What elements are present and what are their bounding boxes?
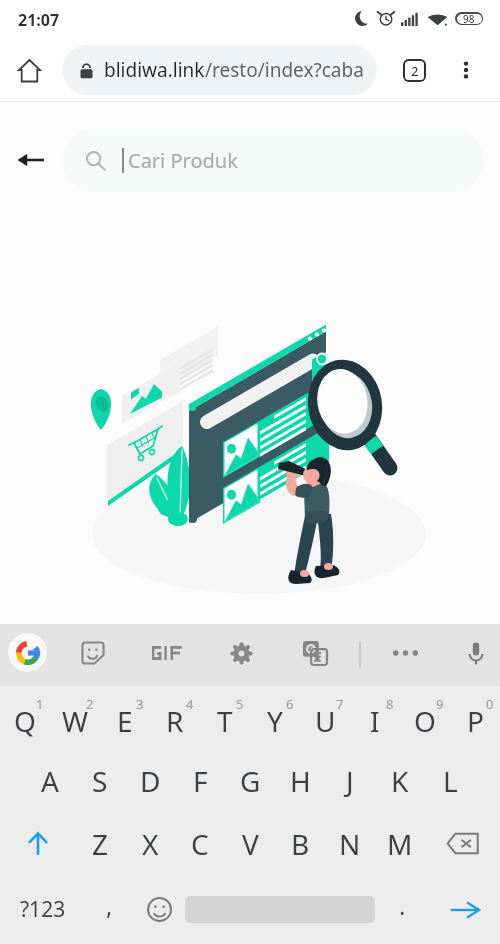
button[interactable]: Settings <box>220 632 262 674</box>
staticText: T <box>217 702 233 740</box>
staticText: , <box>106 889 113 922</box>
staticText: N <box>339 825 361 863</box>
staticText: V <box>242 825 259 863</box>
staticText: M <box>387 825 413 863</box>
staticText: R <box>166 702 184 740</box>
button[interactable]: Back <box>10 140 50 180</box>
button[interactable]: Z <box>75 812 125 875</box>
staticText: 0 <box>486 695 494 713</box>
button[interactable]: E <box>100 686 150 750</box>
button[interactable]: J <box>325 750 375 812</box>
staticText: 9 <box>436 695 444 713</box>
staticText: 3 <box>136 695 144 713</box>
staticText: S <box>92 762 108 800</box>
staticText: 98 <box>463 12 475 25</box>
staticText: Cari Produk <box>128 147 238 174</box>
staticText: O <box>414 702 436 740</box>
staticText: U <box>315 702 336 740</box>
button[interactable]: B <box>275 812 325 875</box>
button[interactable]: Backspace <box>425 812 500 875</box>
button[interactable]: D <box>125 750 175 812</box>
button[interactable]: C <box>175 812 225 875</box>
button[interactable]: U <box>300 686 350 750</box>
button[interactable]: P <box>450 686 500 750</box>
staticText: Y <box>267 702 283 740</box>
button[interactable]: . <box>375 875 430 944</box>
staticText: C <box>191 825 209 863</box>
staticText: 1 <box>36 695 44 713</box>
staticText: 7 <box>336 695 344 713</box>
button[interactable]: Q <box>0 686 50 750</box>
staticText: 5 <box>236 695 244 713</box>
button[interactable]: I <box>350 686 400 750</box>
button[interactable]: Voice input <box>455 632 497 674</box>
button[interactable]: T <box>200 686 250 750</box>
staticText: K <box>391 762 409 800</box>
button[interactable]: GIF <box>146 632 188 674</box>
staticText: E <box>117 702 133 740</box>
button[interactable]: A <box>25 750 75 812</box>
button[interactable]: V <box>225 812 275 875</box>
button[interactable]: F <box>175 750 225 812</box>
staticText: W <box>62 702 89 740</box>
staticText: 2 <box>411 62 419 80</box>
staticText: J <box>346 762 354 800</box>
button[interactable]: , <box>85 875 133 944</box>
staticText: 6 <box>286 695 294 713</box>
staticText: I <box>370 702 380 740</box>
staticText: 2 <box>86 695 94 713</box>
staticText: 4 <box>186 695 194 713</box>
button[interactable]: ?123 <box>0 875 85 944</box>
button[interactable]: blidiwa.link <box>62 45 377 95</box>
button[interactable]: G <box>225 750 275 812</box>
button[interactable]: Stickers <box>72 632 114 674</box>
staticText: A <box>41 762 59 800</box>
staticText: H <box>290 762 311 800</box>
button[interactable]: S <box>75 750 125 812</box>
staticText: X <box>142 825 159 863</box>
button[interactable]: More options <box>446 50 486 90</box>
button[interactable]: H <box>275 750 325 812</box>
button[interactable]: M <box>375 812 425 875</box>
staticText: P <box>467 702 484 740</box>
button[interactable]: Home <box>12 53 46 87</box>
staticText: Z <box>92 825 109 863</box>
staticText: G <box>240 762 261 800</box>
button[interactable]: Google <box>8 633 47 672</box>
button[interactable]: K <box>375 750 425 812</box>
button[interactable]: W <box>50 686 100 750</box>
button[interactable]: Shift <box>0 812 75 875</box>
button[interactable]: Cari Produk <box>62 129 484 192</box>
staticText: B <box>291 825 310 863</box>
button[interactable]: N <box>325 812 375 875</box>
button[interactable]: Translate <box>294 632 336 674</box>
button[interactable]: X <box>125 812 175 875</box>
staticText: L <box>443 762 458 800</box>
staticText: 21:07 <box>18 9 60 31</box>
staticText: Q <box>14 702 36 740</box>
button[interactable]: Space <box>185 875 375 944</box>
staticText: 8 <box>386 695 394 713</box>
staticText: blidiwa.link <box>104 57 205 83</box>
button[interactable]: Enter <box>430 875 500 944</box>
button[interactable]: Emoji <box>133 875 185 944</box>
button[interactable]: Y <box>250 686 300 750</box>
button[interactable]: More <box>384 632 426 674</box>
staticText: . <box>399 889 406 922</box>
button[interactable]: L <box>425 750 475 812</box>
button[interactable]: R <box>150 686 200 750</box>
staticText: ?123 <box>20 895 66 924</box>
staticText: F <box>193 762 208 800</box>
staticText: /resto/index?caba <box>205 57 364 83</box>
button[interactable]: O <box>400 686 450 750</box>
button[interactable]: Tabs <box>394 50 434 90</box>
staticText: D <box>140 762 161 800</box>
